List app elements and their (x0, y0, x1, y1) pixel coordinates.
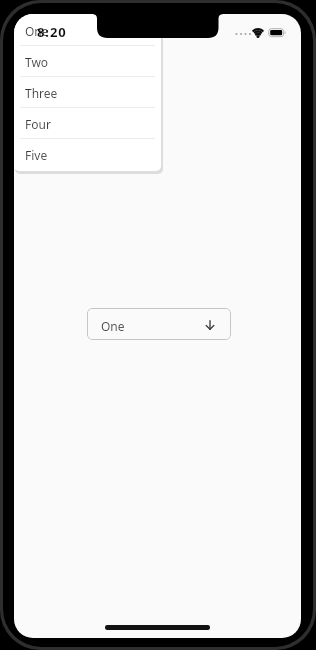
staticText: Two (25, 54, 49, 70)
staticText: Five (25, 147, 48, 163)
staticText: One (25, 23, 49, 39)
staticText: Three (25, 85, 58, 101)
button[interactable]: Four (14, 107, 161, 138)
button[interactable]: One (87, 308, 231, 340)
button[interactable]: Five (14, 138, 161, 169)
button[interactable]: One (14, 14, 161, 45)
button[interactable]: Two (14, 45, 161, 76)
button[interactable]: Three (14, 76, 161, 107)
staticText: 8:20 (37, 23, 67, 41)
staticText: Four (25, 116, 51, 132)
staticText: One (101, 318, 125, 334)
